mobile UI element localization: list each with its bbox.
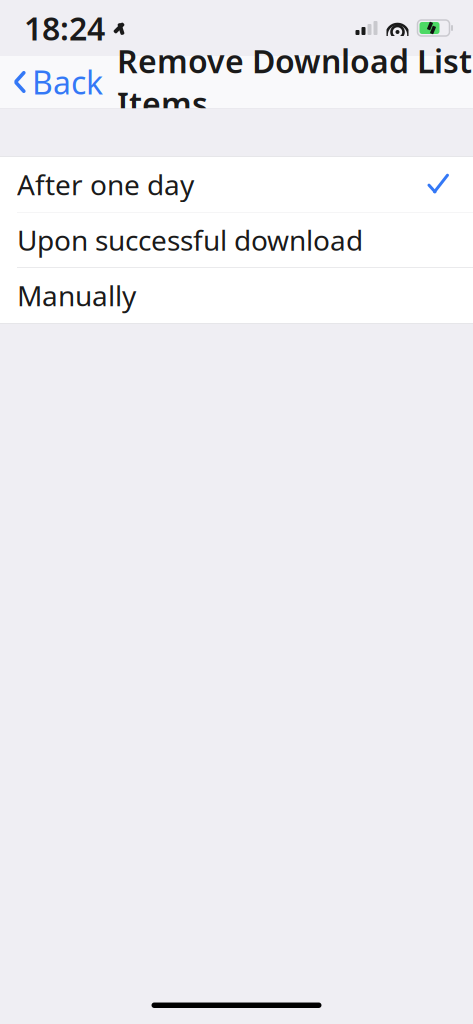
staticText: Back — [32, 61, 103, 103]
staticText: Remove Download List Items — [117, 39, 472, 124]
staticText: Manually — [17, 277, 136, 314]
button[interactable]: Manually — [0, 268, 473, 323]
button[interactable]: After one day — [0, 157, 473, 212]
staticText: 18:24 — [24, 7, 105, 49]
button[interactable]: Upon successful download — [0, 212, 473, 267]
staticText: Upon successful download — [17, 221, 363, 259]
button[interactable]: Back — [0, 57, 111, 107]
staticText: After one day — [17, 166, 194, 203]
